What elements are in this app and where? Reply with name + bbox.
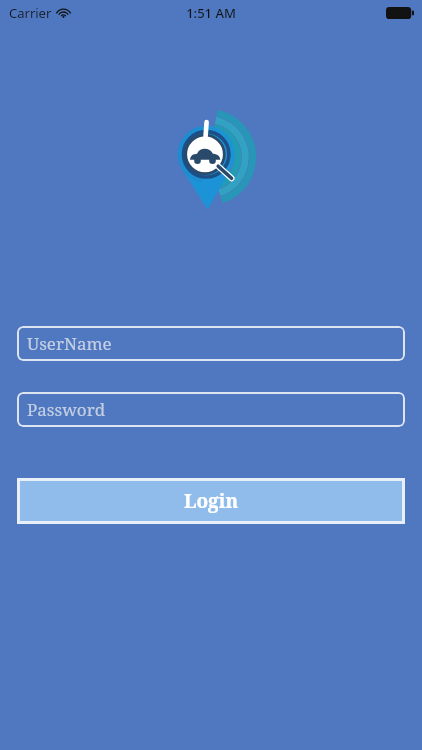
- button[interactable]: UserName: [17, 326, 405, 361]
- staticText: Carrier: [9, 4, 52, 22]
- staticText: 1:51 AM: [186, 4, 236, 22]
- staticText: Password: [27, 398, 106, 421]
- button[interactable]: Login: [17, 478, 405, 524]
- button[interactable]: Password: [17, 392, 405, 427]
- staticText: UserName: [27, 332, 112, 355]
- staticText: Login: [184, 488, 239, 514]
